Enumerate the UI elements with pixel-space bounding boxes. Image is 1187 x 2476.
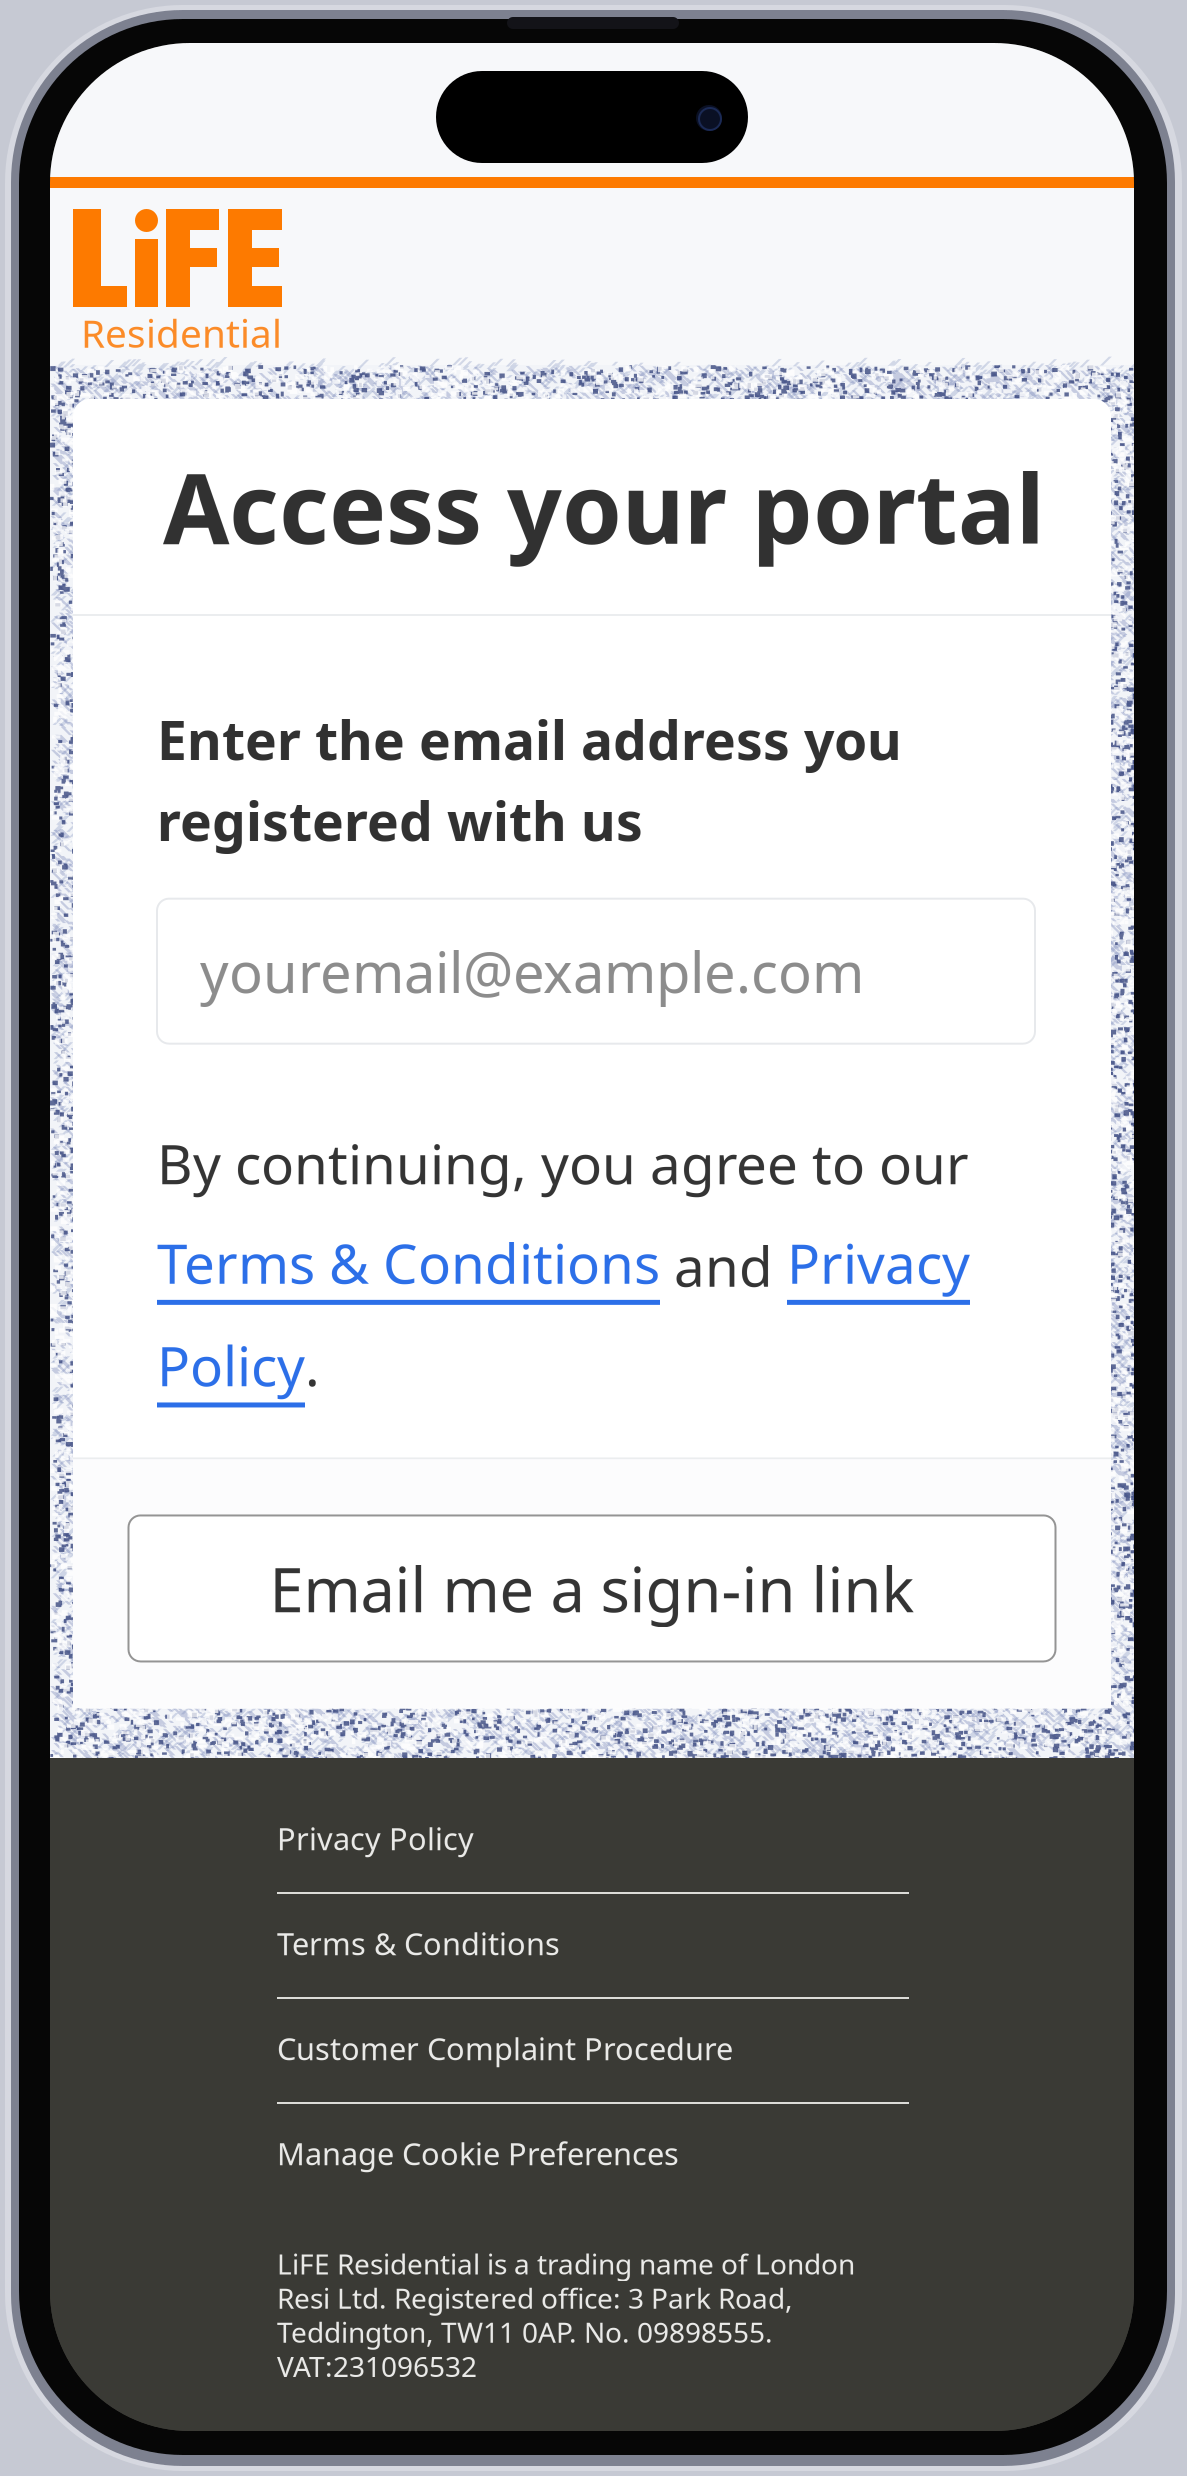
- button[interactable]: Terms & Conditions: [277, 1909, 909, 2014]
- staticText: Email me a sign-in link: [269, 1548, 914, 1629]
- staticText: Residential: [81, 307, 282, 358]
- staticText: Privacy: [787, 1226, 970, 1299]
- staticText: Manage Cookie Preferences: [277, 2133, 679, 2174]
- staticText: Privacy Policy: [277, 1818, 474, 1859]
- button[interactable]: Email me a sign-in link: [128, 1515, 1055, 1661]
- staticText: Enter the email address you: [157, 704, 902, 775]
- staticText: By continuing, you agree to our: [157, 1127, 969, 1199]
- staticText: youremail@example.com: [200, 934, 864, 1008]
- staticText: Terms & Conditions: [157, 1226, 660, 1299]
- staticText: Terms & Conditions: [277, 1923, 560, 1964]
- button[interactable]: Email address: [157, 899, 1035, 1044]
- staticText: Customer Complaint Procedure: [277, 2028, 733, 2069]
- staticText: VAT:231096532: [277, 2347, 477, 2385]
- staticText: and: [660, 1229, 787, 1302]
- staticText: LiFE Residential is a trading name of Lo…: [277, 2245, 855, 2282]
- staticText: .: [305, 1329, 320, 1401]
- button[interactable]: Terms & Conditions: [157, 1226, 660, 1305]
- staticText: registered with us: [157, 785, 643, 856]
- button[interactable]: Policy: [157, 1329, 305, 1407]
- button[interactable]: Privacy Policy: [277, 1804, 909, 1909]
- button[interactable]: Privacy: [787, 1226, 970, 1305]
- staticText: Policy: [157, 1329, 305, 1401]
- staticText: Resi Ltd. Registered office: 3 Park Road…: [277, 2279, 793, 2316]
- button[interactable]: Customer Complaint Procedure: [277, 2014, 909, 2119]
- button[interactable]: Manage Cookie Preferences: [277, 2119, 909, 2224]
- staticText: Access your portal: [163, 443, 1045, 570]
- staticText: Teddington, TW11 0AP. No. 09898555.: [277, 2313, 773, 2351]
